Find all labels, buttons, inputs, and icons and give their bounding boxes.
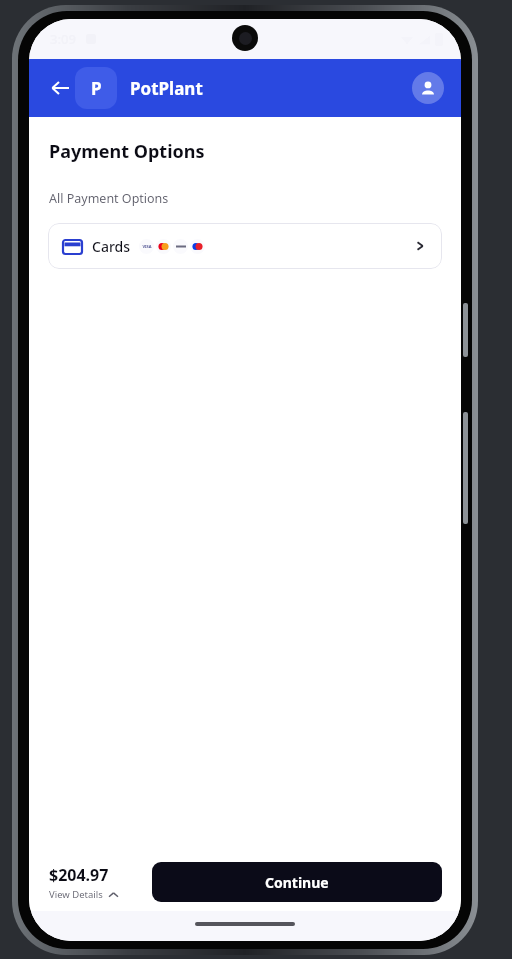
- staticText: $204.97: [49, 864, 109, 886]
- staticText: Continue: [265, 873, 329, 892]
- button[interactable]: Account: [412, 72, 444, 104]
- button[interactable]: View Details: [49, 888, 118, 901]
- button[interactable]: Cards: [48, 223, 442, 269]
- button[interactable]: Back: [41, 69, 79, 107]
- staticText: VISA: [142, 244, 152, 249]
- button[interactable]: Continue: [152, 862, 442, 902]
- staticText: All Payment Options: [49, 190, 169, 207]
- staticText: Cards: [92, 237, 131, 256]
- staticText: P: [91, 77, 102, 100]
- staticText: Payment Options: [49, 139, 205, 164]
- staticText: PotPlant: [130, 77, 203, 100]
- staticText: View Details: [49, 888, 103, 901]
